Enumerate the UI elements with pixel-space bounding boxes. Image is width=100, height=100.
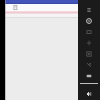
button[interactable]: Settings (79, 15, 99, 26)
button[interactable]: Camera (79, 26, 99, 37)
button[interactable]: Menu (13, 5, 18, 10)
button[interactable]: Volume (79, 88, 99, 99)
button[interactable]: Screenshot (79, 59, 99, 70)
button[interactable]: Rotate (79, 37, 99, 48)
button[interactable]: Location (79, 48, 99, 59)
button[interactable]: Record (79, 70, 99, 81)
button[interactable]: More (79, 4, 99, 15)
